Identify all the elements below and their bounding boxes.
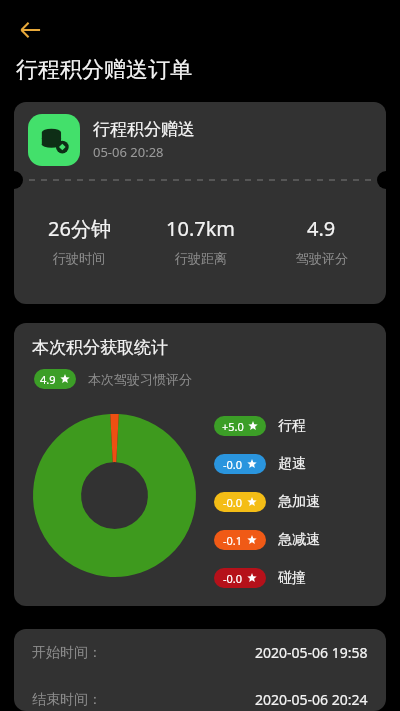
staticText: 05-06 20:28 xyxy=(93,143,164,161)
staticText: 开始时间： xyxy=(32,644,102,662)
staticText: 本次积分获取统计 xyxy=(32,337,168,358)
staticText: 行程 xyxy=(278,417,306,435)
staticText: 驾驶评分 xyxy=(296,250,348,266)
staticText: 4.9 xyxy=(40,372,56,387)
button[interactable]: -0.1 xyxy=(214,521,386,559)
staticText: 10.7km xyxy=(166,215,236,242)
staticText: -0.1 xyxy=(223,533,243,548)
staticText: 2020-05-06 19:58 xyxy=(255,643,368,662)
staticText: -0.0 xyxy=(223,571,243,586)
button[interactable]: 行程积分赠送 xyxy=(14,102,386,304)
button[interactable]: -0.0 xyxy=(214,483,386,521)
staticText: 行驶距离 xyxy=(175,250,227,266)
staticText: 2020-05-06 20:24 xyxy=(255,690,368,709)
button[interactable]: -0.0 xyxy=(214,445,386,483)
staticText: -0.0 xyxy=(223,457,243,472)
staticText: -0.0 xyxy=(223,495,243,510)
staticText: 4.9 xyxy=(307,215,336,242)
staticText: 结束时间： xyxy=(32,691,102,709)
button[interactable]: -0.0 xyxy=(214,559,386,597)
button[interactable]: Back xyxy=(10,10,50,50)
staticText: 急减速 xyxy=(278,531,320,549)
button[interactable]: +5.0 xyxy=(214,407,386,445)
staticText: 碰撞 xyxy=(278,569,306,587)
staticText: 行程积分赠送订单 xyxy=(16,56,192,84)
staticText: +5.0 xyxy=(222,419,244,434)
staticText: 超速 xyxy=(278,455,306,473)
staticText: 26分钟 xyxy=(48,215,111,242)
staticText: 急加速 xyxy=(278,493,320,511)
staticText: 行驶时间 xyxy=(53,250,105,266)
staticText: 本次驾驶习惯评分 xyxy=(88,371,192,387)
staticText: 行程积分赠送 xyxy=(93,119,195,140)
